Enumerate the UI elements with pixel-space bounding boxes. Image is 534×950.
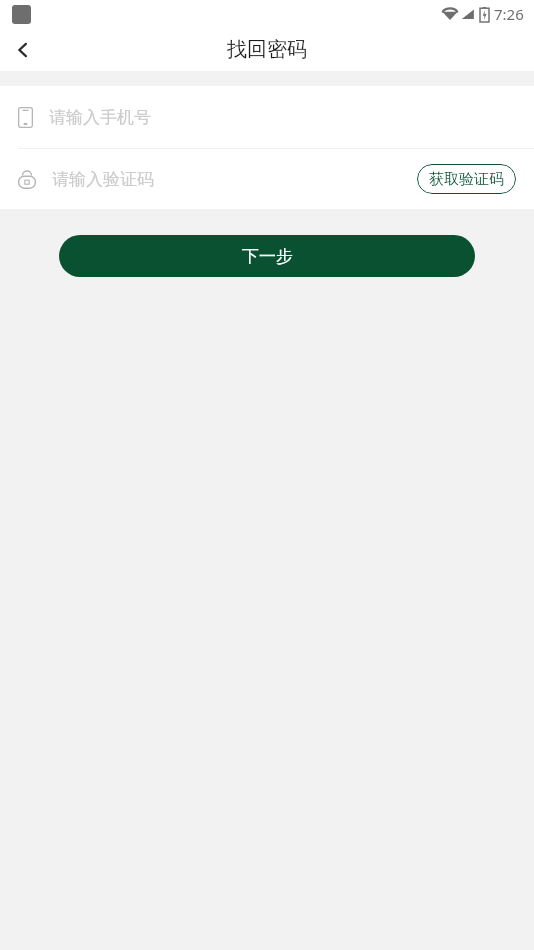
button[interactable]: Back bbox=[0, 28, 46, 71]
button[interactable]: 请输入手机号 bbox=[0, 86, 534, 148]
staticText: 获取验证码 bbox=[429, 170, 504, 189]
staticText: 7:26 bbox=[494, 4, 524, 24]
button[interactable]: 获取验证码 bbox=[417, 164, 516, 194]
staticText: 请输入验证码 bbox=[52, 169, 154, 190]
staticText: 下一步 bbox=[242, 246, 293, 267]
staticText: 找回密码 bbox=[227, 37, 307, 62]
button[interactable]: 下一步 bbox=[59, 235, 475, 277]
staticText: 请输入手机号 bbox=[49, 107, 151, 128]
